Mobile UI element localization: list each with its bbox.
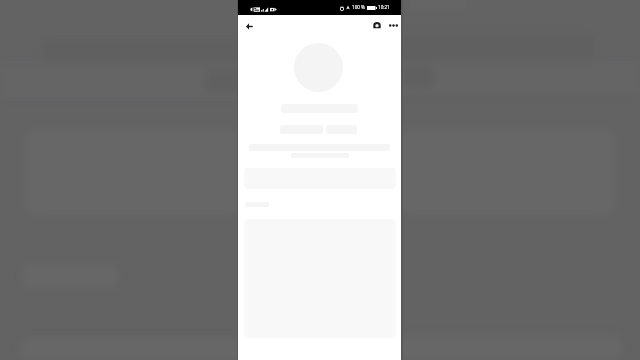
staticText: 100 % [352,4,365,10]
button[interactable]: More options [384,16,402,34]
staticText: 10:21 [378,4,390,10]
button[interactable]: Profile picture [294,43,343,92]
button[interactable]: Back [240,17,258,35]
button[interactable]: Notifications [368,16,386,34]
button[interactable] [238,0,390,119]
button[interactable] [238,0,390,21]
